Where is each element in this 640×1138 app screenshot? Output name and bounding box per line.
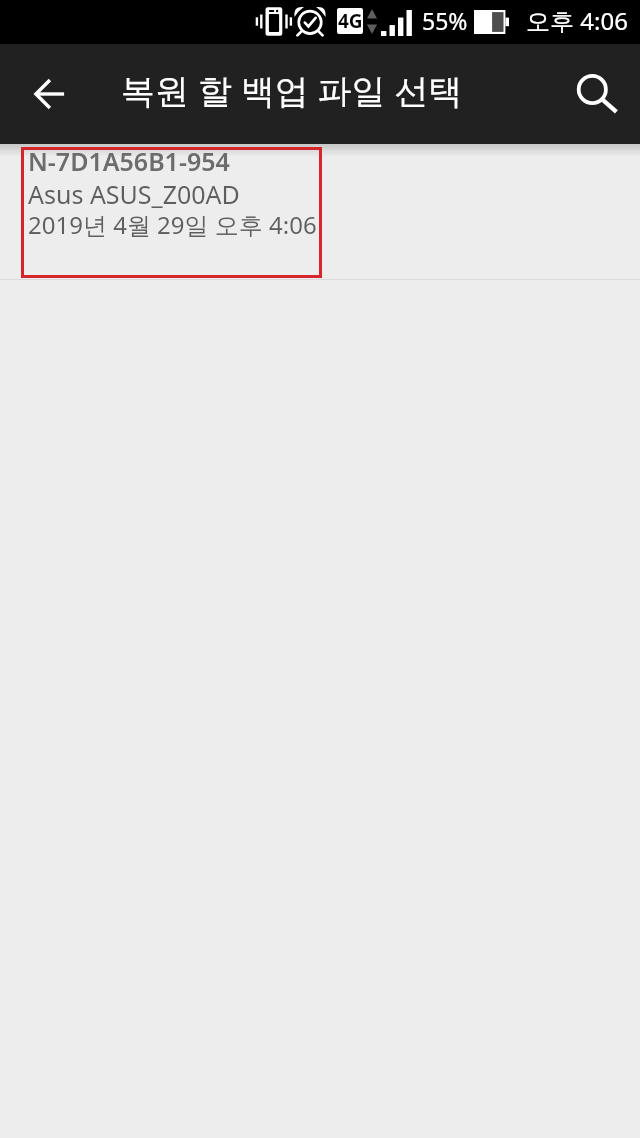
button[interactable]: Back (14, 58, 86, 130)
button[interactable]: N-7D1A56B1-954 (0, 147, 640, 280)
staticText: 오후 4:06 (526, 4, 628, 37)
staticText: N-7D1A56B1-954 (28, 144, 230, 178)
button[interactable]: Search (564, 58, 632, 126)
staticText: 4G (338, 8, 363, 34)
staticText: 55% (422, 5, 468, 36)
staticText: 복원 할 백업 파일 선택 (121, 67, 463, 113)
staticText: 2019년 4월 29일 오후 4:06 (28, 208, 317, 241)
staticText: Asus ASUS_Z00AD (28, 177, 240, 211)
